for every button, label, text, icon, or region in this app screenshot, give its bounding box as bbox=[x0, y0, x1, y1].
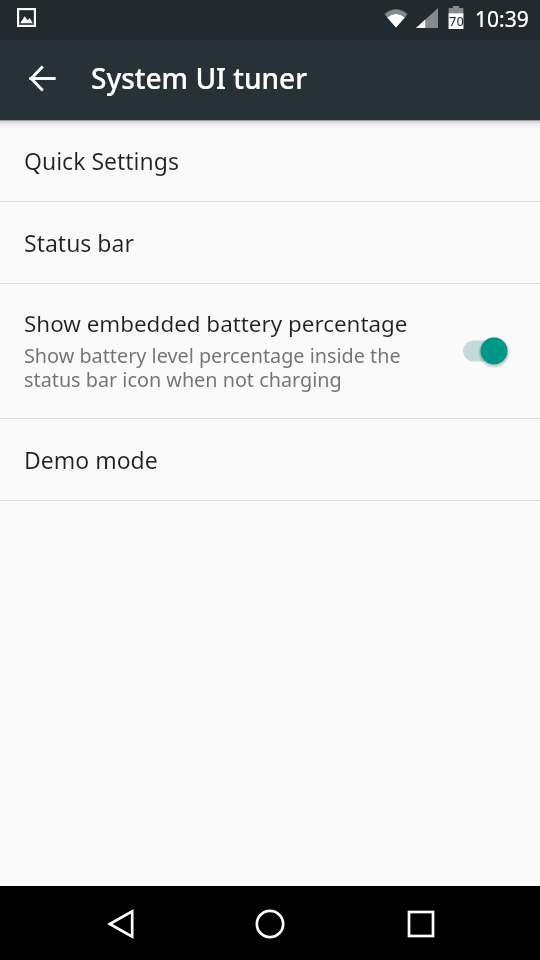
button[interactable]: Demo mode bbox=[0, 419, 540, 500]
other: Screenshot captured bbox=[17, 8, 36, 27]
button[interactable]: Show embedded battery percentage toggle bbox=[458, 321, 540, 381]
staticText: System UI tuner bbox=[91, 59, 307, 97]
staticText: Show embedded battery percentage bbox=[24, 308, 408, 339]
other: Wi-Fi bbox=[384, 8, 408, 28]
staticText: 10:39 bbox=[475, 5, 529, 34]
button[interactable]: Home bbox=[240, 894, 300, 954]
staticText: Status bar bbox=[24, 227, 134, 258]
staticText: Demo mode bbox=[24, 444, 158, 475]
button[interactable]: Back bbox=[91, 894, 151, 954]
button[interactable]: Status bar bbox=[0, 202, 540, 283]
staticText: Quick Settings bbox=[24, 145, 179, 176]
staticText: Show battery level percentage inside the… bbox=[24, 342, 401, 393]
button[interactable]: Quick Settings bbox=[0, 120, 540, 201]
button[interactable]: Show embedded battery percentage bbox=[0, 284, 540, 418]
other: Mobile signal bbox=[416, 8, 438, 28]
button[interactable]: Back bbox=[18, 54, 66, 102]
staticText: 70 bbox=[449, 12, 464, 30]
button[interactable]: Recents bbox=[391, 894, 451, 954]
